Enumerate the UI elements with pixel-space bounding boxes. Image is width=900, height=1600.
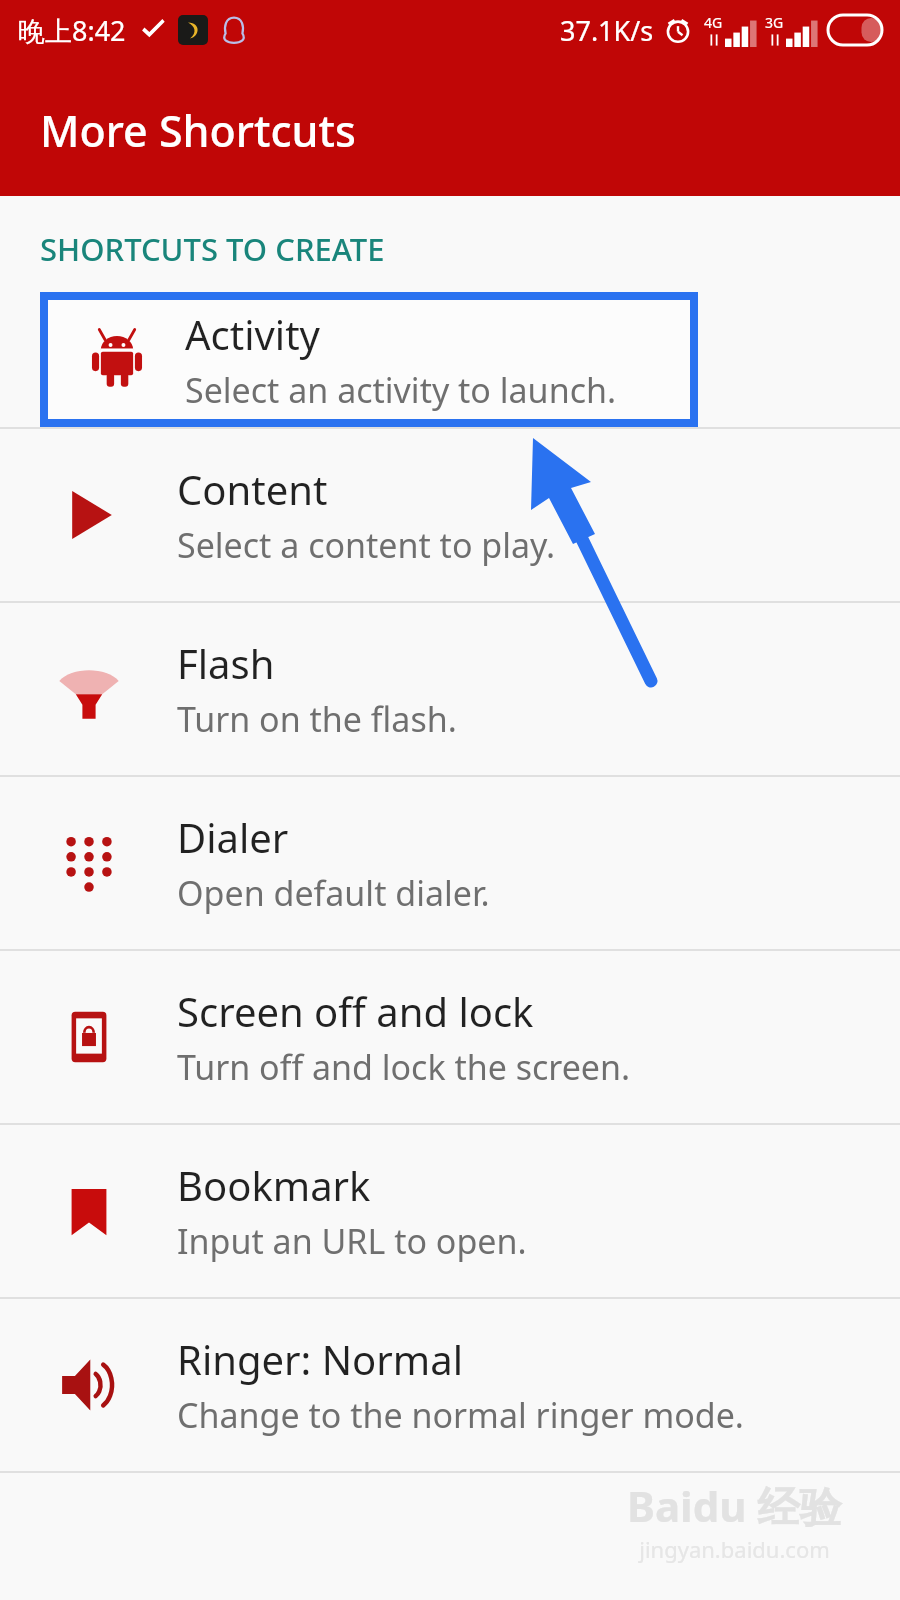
- button[interactable]: Screen off and lock: [0, 951, 900, 1123]
- button[interactable]: Content: [0, 429, 900, 601]
- button[interactable]: Flash: [0, 603, 900, 775]
- staticText: 37.1K/s: [560, 12, 654, 49]
- staticText: 4G: [704, 13, 723, 32]
- staticText: Flash: [177, 636, 275, 690]
- staticText: Content: [177, 462, 328, 516]
- staticText: Turn on the flash.: [177, 696, 457, 742]
- staticText: SHORTCUTS TO CREATE: [40, 228, 385, 270]
- other: Screen off and lock: [59, 1007, 119, 1067]
- staticText: 3G: [765, 13, 784, 32]
- staticText: Change to the normal ringer mode.: [177, 1392, 744, 1438]
- other: Content: [59, 485, 119, 545]
- staticText: 晚上8:42: [18, 12, 126, 49]
- staticText: Turn off and lock the screen.: [177, 1044, 631, 1090]
- button[interactable]: Ringer Normal: [0, 1299, 900, 1471]
- button[interactable]: Bookmark: [0, 1125, 900, 1297]
- staticText: Screen off and lock: [177, 984, 534, 1038]
- button[interactable]: Activity: [48, 300, 690, 419]
- other: Flash: [56, 656, 122, 722]
- staticText: Bookmark: [177, 1158, 371, 1212]
- staticText: Dialer: [177, 810, 289, 864]
- staticText: jingyan.baidu.com: [639, 1534, 830, 1564]
- staticText: Open default dialer.: [177, 870, 490, 916]
- staticText: Ringer: Normal: [177, 1332, 463, 1386]
- staticText: Select an activity to launch.: [185, 367, 617, 413]
- other: Dialer: [61, 835, 117, 891]
- staticText: More Shortcuts: [40, 101, 356, 160]
- staticText: Activity: [185, 307, 320, 361]
- staticText: Select a content to play.: [177, 522, 556, 568]
- other: Ringer Normal: [57, 1353, 121, 1417]
- button[interactable]: Dialer: [0, 777, 900, 949]
- other: Bookmark: [60, 1182, 118, 1240]
- staticText: Baidu 经验: [627, 1477, 842, 1534]
- staticText: Input an URL to open.: [177, 1218, 527, 1264]
- other: Activity: [86, 329, 148, 391]
